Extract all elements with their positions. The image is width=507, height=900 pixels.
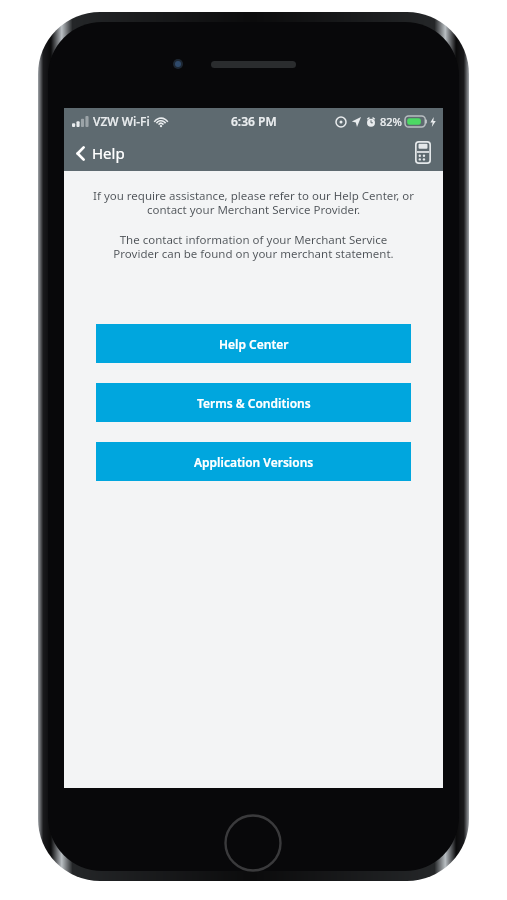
staticText: The contact information of your Merchant… [96,232,411,262]
staticText: Help [92,143,125,163]
button[interactable]: Help [64,137,137,169]
staticText: 82% [380,114,402,129]
staticText: Help Center [219,336,289,352]
button[interactable]: Terms & Conditions [96,383,411,422]
staticText: 6:36 PM [231,113,277,129]
staticText: Application Versions [194,454,314,470]
staticText: Terms & Conditions [197,395,311,411]
staticText: If you require assistance, please refer … [88,188,419,218]
staticText: VZW Wi-Fi [93,113,150,129]
button[interactable]: Application Versions [96,442,411,481]
button[interactable]: Help Center [96,324,411,363]
button[interactable]: Card reader [403,135,443,170]
